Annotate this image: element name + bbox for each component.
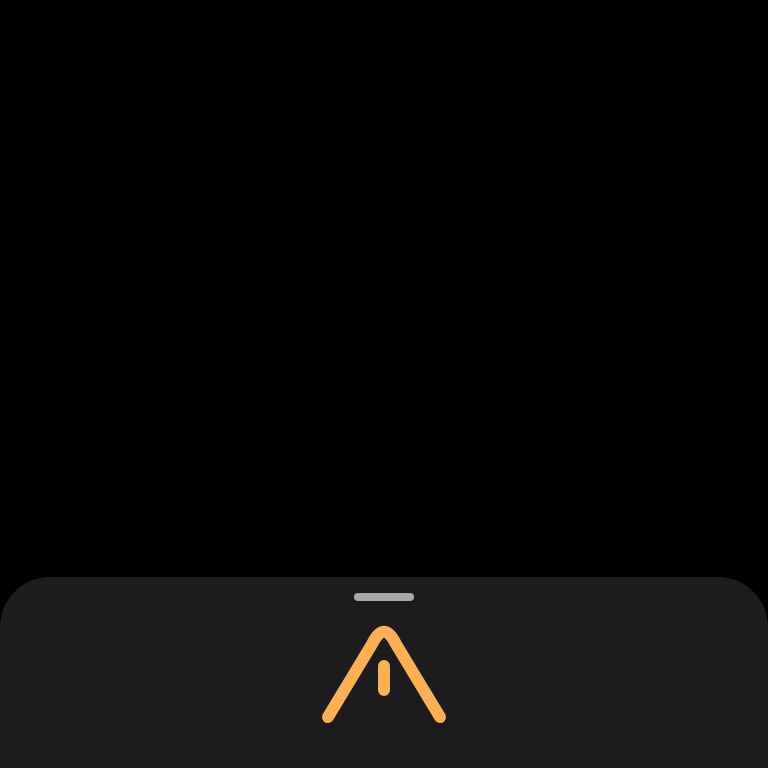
button[interactable]: Drag handle — [338, 577, 430, 617]
other: Warning — [294, 577, 474, 697]
